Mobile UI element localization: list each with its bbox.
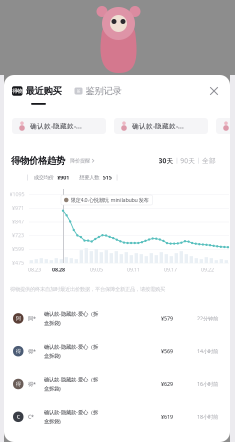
staticText: 得* [28, 380, 36, 388]
staticText: 阿 [16, 315, 21, 322]
staticText: 22分钟前 [197, 315, 218, 322]
button[interactable]: 全部 [202, 157, 216, 165]
staticText: 09.11 [127, 266, 140, 273]
button[interactable]: C [4, 400, 230, 433]
staticText: 08.28 [52, 266, 65, 273]
staticText: 确认款-隐藏款-爱心（拆 [44, 310, 98, 317]
staticText: 限定4.0 心悦潮玩 mini labubu 发布 [70, 196, 148, 204]
staticText: 盒拆袋) [44, 319, 61, 326]
staticText: 盒拆袋) [44, 352, 61, 359]
staticText: 18小时前 [197, 413, 218, 420]
staticText: 阿* [28, 315, 36, 322]
staticText: 想要人数 [79, 174, 99, 181]
staticText: ¥723 [12, 232, 24, 239]
staticText: 90天 [180, 156, 195, 165]
staticText: 16小时前 [197, 380, 218, 388]
staticText: 鉴 [76, 88, 80, 93]
button[interactable]: 确认款-隐藏款-... [216, 118, 235, 134]
staticText: 08.23 [28, 266, 41, 273]
staticText: C [17, 413, 20, 420]
staticText: 确认款-隐藏款-爱心（拆 [44, 409, 98, 416]
staticText: ¥901 [57, 174, 69, 181]
button[interactable]: 得 [4, 335, 230, 368]
button[interactable]: 90天 [180, 156, 195, 165]
staticText: 515 [103, 174, 112, 181]
staticText: 30天 [159, 156, 174, 165]
staticText: 鉴别记录 [85, 85, 121, 97]
button[interactable]: Close [208, 85, 220, 97]
staticText: 盒拆袋) [44, 418, 61, 425]
staticText: 09.22 [201, 266, 214, 273]
staticText: ¥619 [161, 413, 173, 420]
button[interactable]: 得物 [12, 85, 61, 97]
staticText: 得物 [12, 88, 22, 94]
staticText: 成交均价 [34, 174, 54, 181]
staticText: 确认款-隐藏款-爱心（拆 [44, 376, 98, 383]
staticText: 09.05 [90, 266, 103, 273]
button[interactable]: 降价提醒 [70, 157, 94, 164]
staticText: ¥569 [161, 348, 173, 355]
staticText: 14小时前 [197, 348, 218, 355]
button[interactable]: 确认款-隐藏款-... [12, 118, 106, 134]
button[interactable]: 得 [4, 368, 230, 400]
staticText: 得 [16, 348, 21, 354]
staticText: 确认款-隐藏款-爱心（拆 [44, 343, 98, 350]
staticText: 得* [28, 348, 36, 355]
staticText: 得 [16, 381, 21, 387]
staticText: 盒拆袋) [44, 385, 61, 392]
button[interactable]: 确认款-隐藏款-... [114, 118, 208, 134]
staticText: ¥629 [161, 380, 173, 388]
staticText: 降价提醒 [70, 157, 90, 164]
button[interactable]: 阿 [4, 302, 230, 335]
staticText: 最近购买 [25, 85, 61, 97]
staticText: ¥599 [12, 245, 24, 252]
staticText: ¥1095 [9, 191, 24, 198]
staticText: ¥847 [12, 218, 24, 225]
staticText: 确认款-隐藏款-... [132, 122, 184, 130]
staticText: ¥579 [161, 315, 173, 322]
button[interactable]: 30天 [159, 156, 174, 165]
button[interactable]: 鉴 [74, 85, 121, 97]
staticText: 全部 [202, 157, 216, 165]
staticText: ¥475 [12, 259, 24, 266]
staticText: 确认款-隐藏款-... [30, 122, 82, 130]
staticText: ¥971 [12, 204, 24, 211]
staticText: 09.17 [164, 266, 177, 273]
staticText: C* [28, 413, 34, 420]
staticText: 得物提供的终末自加时最近出价数据，平台保障全新正品，请按需购买 [10, 286, 165, 293]
staticText: 得物价格趋势 [11, 155, 65, 166]
